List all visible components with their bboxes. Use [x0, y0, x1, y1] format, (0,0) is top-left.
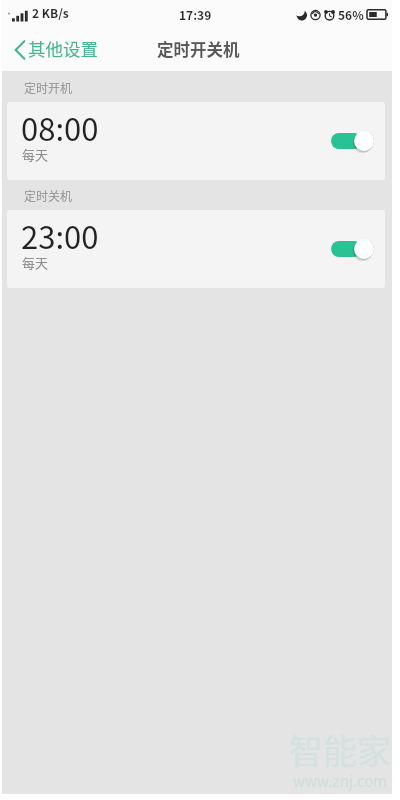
button[interactable]: Back to 其他设置	[2, 28, 112, 71]
button[interactable]: Toggle schedule	[331, 129, 374, 153]
staticText: 定时开机	[24, 79, 73, 96]
staticText: 定时开关机	[157, 37, 240, 61]
staticText: 每天	[22, 145, 49, 164]
button[interactable]: 23:00	[7, 210, 385, 288]
staticText: 17:39	[179, 6, 212, 23]
staticText: 2 KB/s	[32, 4, 69, 21]
staticText: 23:00	[21, 213, 99, 258]
staticText: 其他设置	[28, 36, 98, 61]
staticText: www.znj.com	[293, 770, 388, 792]
staticText: 定时关机	[24, 187, 73, 204]
button[interactable]: 08:00	[7, 102, 385, 180]
staticText: 智能家	[289, 725, 391, 774]
staticText: 08:00	[21, 105, 99, 150]
staticText: 56%	[338, 6, 364, 23]
staticText: 每天	[22, 253, 49, 272]
button[interactable]: Toggle schedule	[331, 237, 374, 261]
